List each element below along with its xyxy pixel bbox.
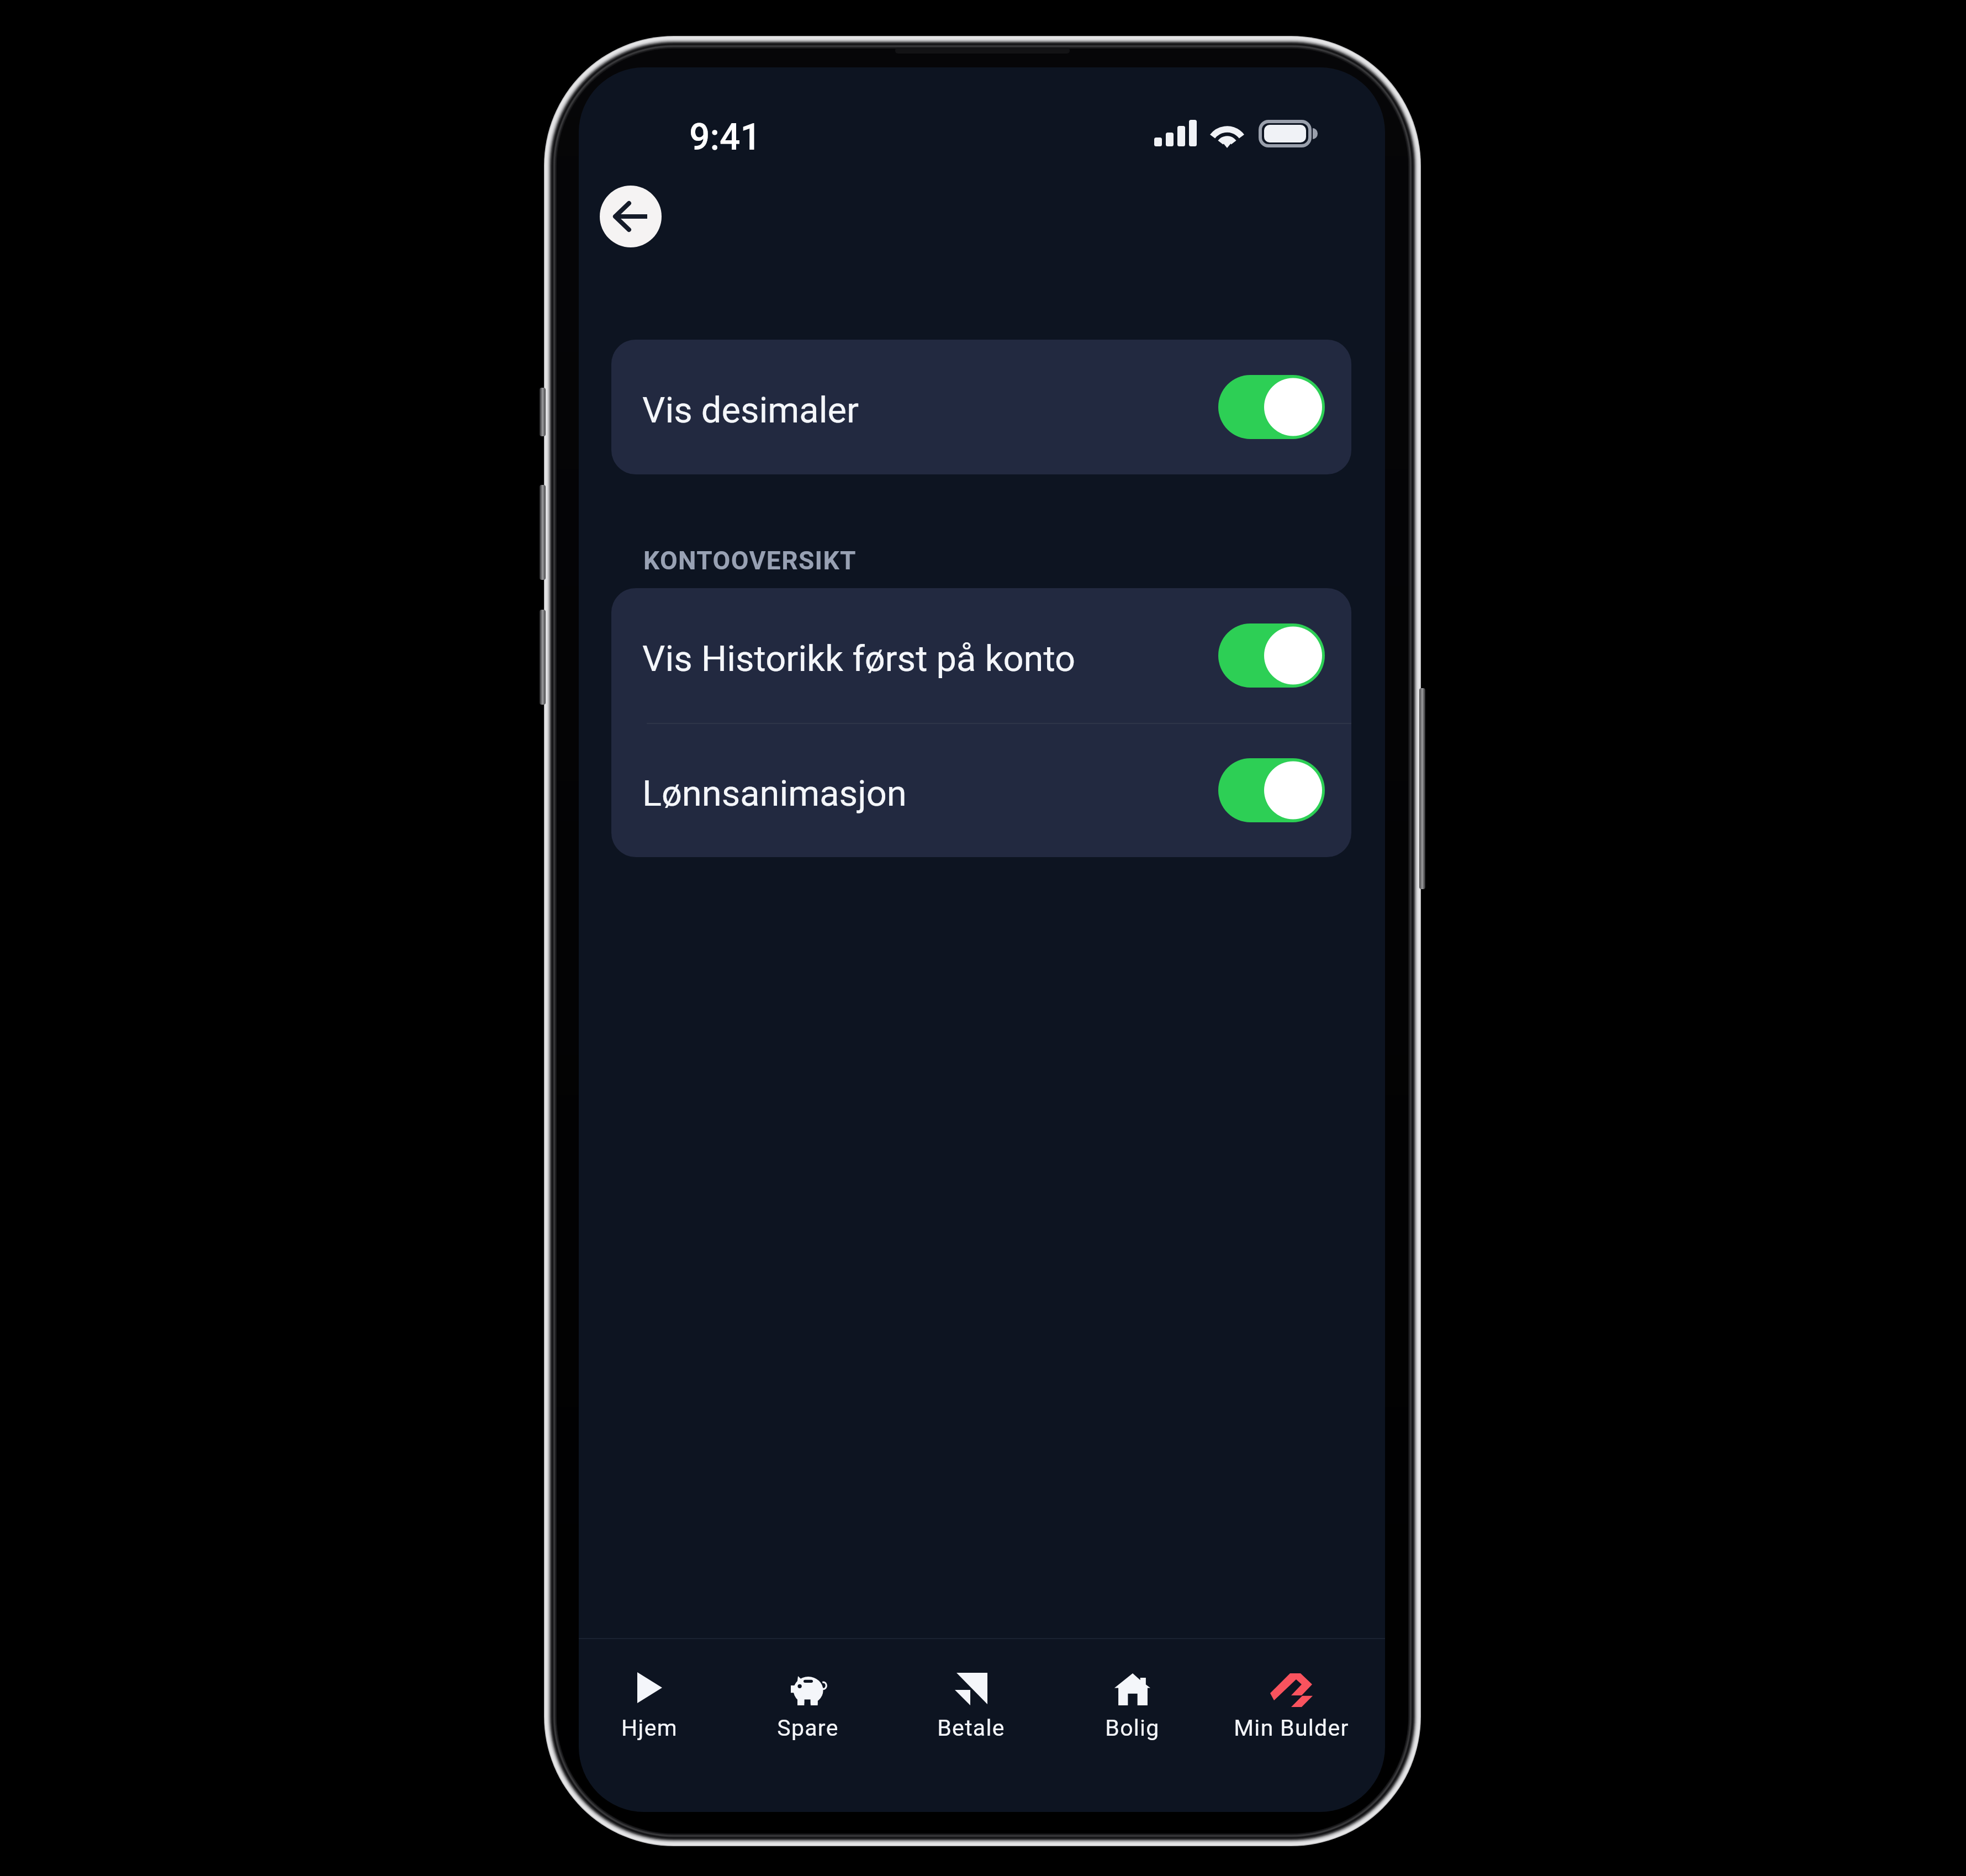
button[interactable]: Toggle on (1218, 758, 1325, 822)
button[interactable]: Bolig (1051, 1638, 1213, 1782)
button[interactable]: Hjem (579, 1638, 730, 1782)
button[interactable]: Toggle on (1218, 375, 1325, 439)
button[interactable]: Spare (727, 1638, 889, 1782)
staticText: Vis Historikk først på konto (642, 638, 1076, 680)
button[interactable]: Vis desimaler (611, 340, 1351, 474)
button[interactable]: Lønnsanimasjon (611, 723, 1351, 857)
staticText: Min Bulder (1234, 1715, 1349, 1741)
staticText: Bolig (1105, 1715, 1160, 1741)
staticText: Betale (937, 1715, 1005, 1741)
button[interactable]: Vis Historikk først på konto (611, 588, 1351, 723)
staticText: Lønnsanimasjon (642, 773, 907, 815)
staticText: 9:41 (689, 116, 762, 158)
button[interactable]: Betale (890, 1638, 1051, 1782)
staticText: Vis desimaler (642, 389, 859, 431)
staticText: KONTOOVERSIKT (643, 546, 857, 575)
staticText: Hjem (621, 1715, 678, 1741)
button[interactable]: Back (600, 186, 662, 247)
button[interactable]: Toggle on (1218, 623, 1325, 688)
button[interactable]: Min Bulder (1211, 1638, 1372, 1782)
staticText: Spare (777, 1715, 839, 1741)
